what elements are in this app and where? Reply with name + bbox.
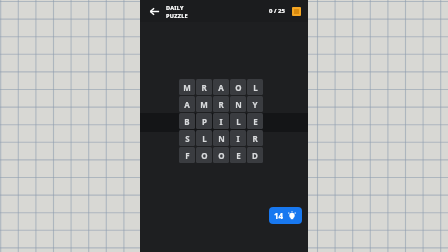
button[interactable]: R (196, 79, 212, 95)
staticText: O (235, 82, 242, 93)
button[interactable]: R (247, 130, 263, 146)
staticText: R (252, 133, 258, 144)
button[interactable]: N (230, 96, 246, 112)
button[interactable]: F (179, 147, 195, 163)
button[interactable]: O (230, 79, 246, 95)
staticText: O (201, 150, 208, 161)
button[interactable]: D (247, 147, 263, 163)
staticText: F (185, 150, 190, 161)
button[interactable]: Coins (290, 5, 302, 17)
button[interactable]: S (179, 130, 195, 146)
staticText: I (219, 116, 223, 127)
staticText: PUZZLE (166, 12, 188, 19)
staticText: A (184, 99, 190, 110)
staticText: L (253, 82, 258, 93)
button[interactable]: O (196, 147, 212, 163)
button[interactable]: M (196, 96, 212, 112)
staticText: R (201, 82, 207, 93)
staticText: S (185, 133, 190, 144)
button[interactable]: L (196, 130, 212, 146)
staticText: D (252, 150, 258, 161)
staticText: O (218, 150, 225, 161)
staticText: A (218, 82, 224, 93)
button[interactable]: M (179, 79, 195, 95)
button[interactable]: I (213, 113, 229, 129)
button[interactable]: E (230, 147, 246, 163)
button[interactable]: P (196, 113, 212, 129)
staticText: P (202, 116, 207, 127)
button[interactable]: L (247, 79, 263, 95)
button[interactable]: N (213, 130, 229, 146)
button[interactable]: Y (247, 96, 263, 112)
staticText: L (202, 133, 207, 144)
button[interactable]: A (179, 96, 195, 112)
staticText: M (183, 82, 191, 93)
button[interactable]: I (230, 130, 246, 146)
button[interactable]: Back (146, 3, 162, 19)
button[interactable]: R (213, 96, 229, 112)
staticText: N (235, 99, 242, 110)
button[interactable]: A (213, 79, 229, 95)
staticText: N (218, 133, 225, 144)
staticText: Y (252, 99, 258, 110)
button[interactable]: O (213, 147, 229, 163)
staticText: DAILY (166, 4, 184, 11)
staticText: M (200, 99, 208, 110)
staticText: 0 / 25 (269, 7, 285, 15)
staticText: I (236, 133, 240, 144)
staticText: E (253, 116, 258, 127)
staticText: L (236, 116, 241, 127)
button[interactable]: B (179, 113, 195, 129)
staticText: R (218, 99, 224, 110)
staticText: 14 (274, 210, 284, 221)
staticText: E (236, 150, 241, 161)
button[interactable]: L (230, 113, 246, 129)
button[interactable]: E (247, 113, 263, 129)
staticText: B (184, 116, 190, 127)
button[interactable]: 14 (269, 207, 302, 224)
